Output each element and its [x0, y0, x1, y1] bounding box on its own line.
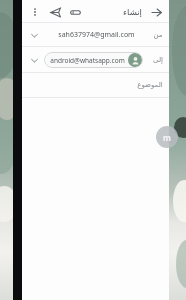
button[interactable]: إنشاء	[123, 7, 142, 17]
staticText: من	[153, 31, 163, 39]
button[interactable]: Expand CC BCC	[22, 47, 169, 73]
button[interactable]: More options	[27, 4, 43, 20]
staticText: android@whatsapp.com	[50, 56, 125, 65]
staticText: m	[163, 132, 171, 143]
staticText: إلى	[153, 56, 163, 64]
button[interactable]: Attach file	[67, 4, 83, 20]
button[interactable]: Send	[47, 4, 63, 20]
button[interactable]: android@whatsapp.com	[50, 52, 142, 68]
button[interactable]: Back	[148, 4, 164, 20]
staticText: الموضوع	[137, 81, 163, 89]
button[interactable]: Floating bubble	[156, 126, 178, 148]
button[interactable]: الموضوع	[22, 73, 169, 97]
button[interactable]: Expand CC BCC	[28, 54, 40, 66]
staticText: sah637974@gmail.com	[58, 30, 135, 40]
staticText: إنشاء	[123, 7, 142, 17]
button[interactable]: Expand recipients	[22, 23, 169, 47]
button[interactable]: Expand recipients	[28, 29, 40, 41]
